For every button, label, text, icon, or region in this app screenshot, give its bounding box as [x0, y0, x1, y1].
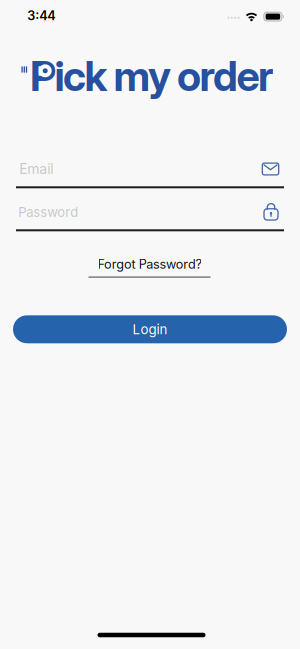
- staticText: Login: [132, 321, 167, 337]
- staticText: Pick my order: [30, 51, 274, 101]
- staticText: Email: [19, 160, 53, 177]
- button[interactable]: Email: [16, 140, 284, 190]
- button[interactable]: Forgot Password?: [88, 257, 210, 278]
- staticText: Forgot Password?: [97, 257, 201, 272]
- staticText: Password: [18, 204, 78, 220]
- staticText: 3:44: [27, 8, 55, 23]
- button[interactable]: Login: [13, 315, 287, 343]
- button[interactable]: Password: [16, 183, 284, 233]
